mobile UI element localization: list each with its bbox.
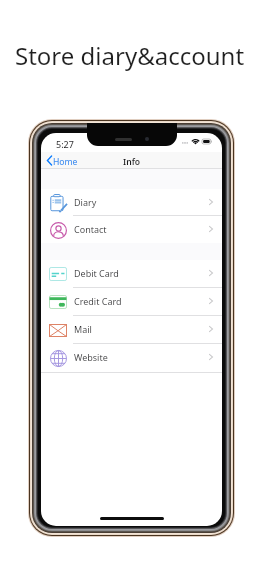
staticText: 5:27 (56, 138, 74, 150)
button[interactable]: Debit Card (41, 260, 222, 288)
staticText: Debit Card (74, 267, 119, 279)
button[interactable]: Contact (41, 216, 222, 243)
button[interactable]: Home (41, 152, 84, 169)
staticText: Credit Card (74, 295, 122, 307)
staticText: Home (53, 156, 78, 168)
staticText: Info (123, 156, 141, 168)
button[interactable]: Website (41, 344, 222, 372)
staticText: Store diary&account (15, 39, 245, 72)
staticText: Diary (74, 196, 97, 208)
button[interactable]: Diary (41, 189, 222, 216)
button[interactable]: Credit Card (41, 288, 222, 316)
button[interactable]: Mail (41, 316, 222, 344)
staticText: Contact (74, 223, 107, 235)
staticText: Mail (74, 323, 92, 335)
staticText: Website (74, 351, 108, 363)
